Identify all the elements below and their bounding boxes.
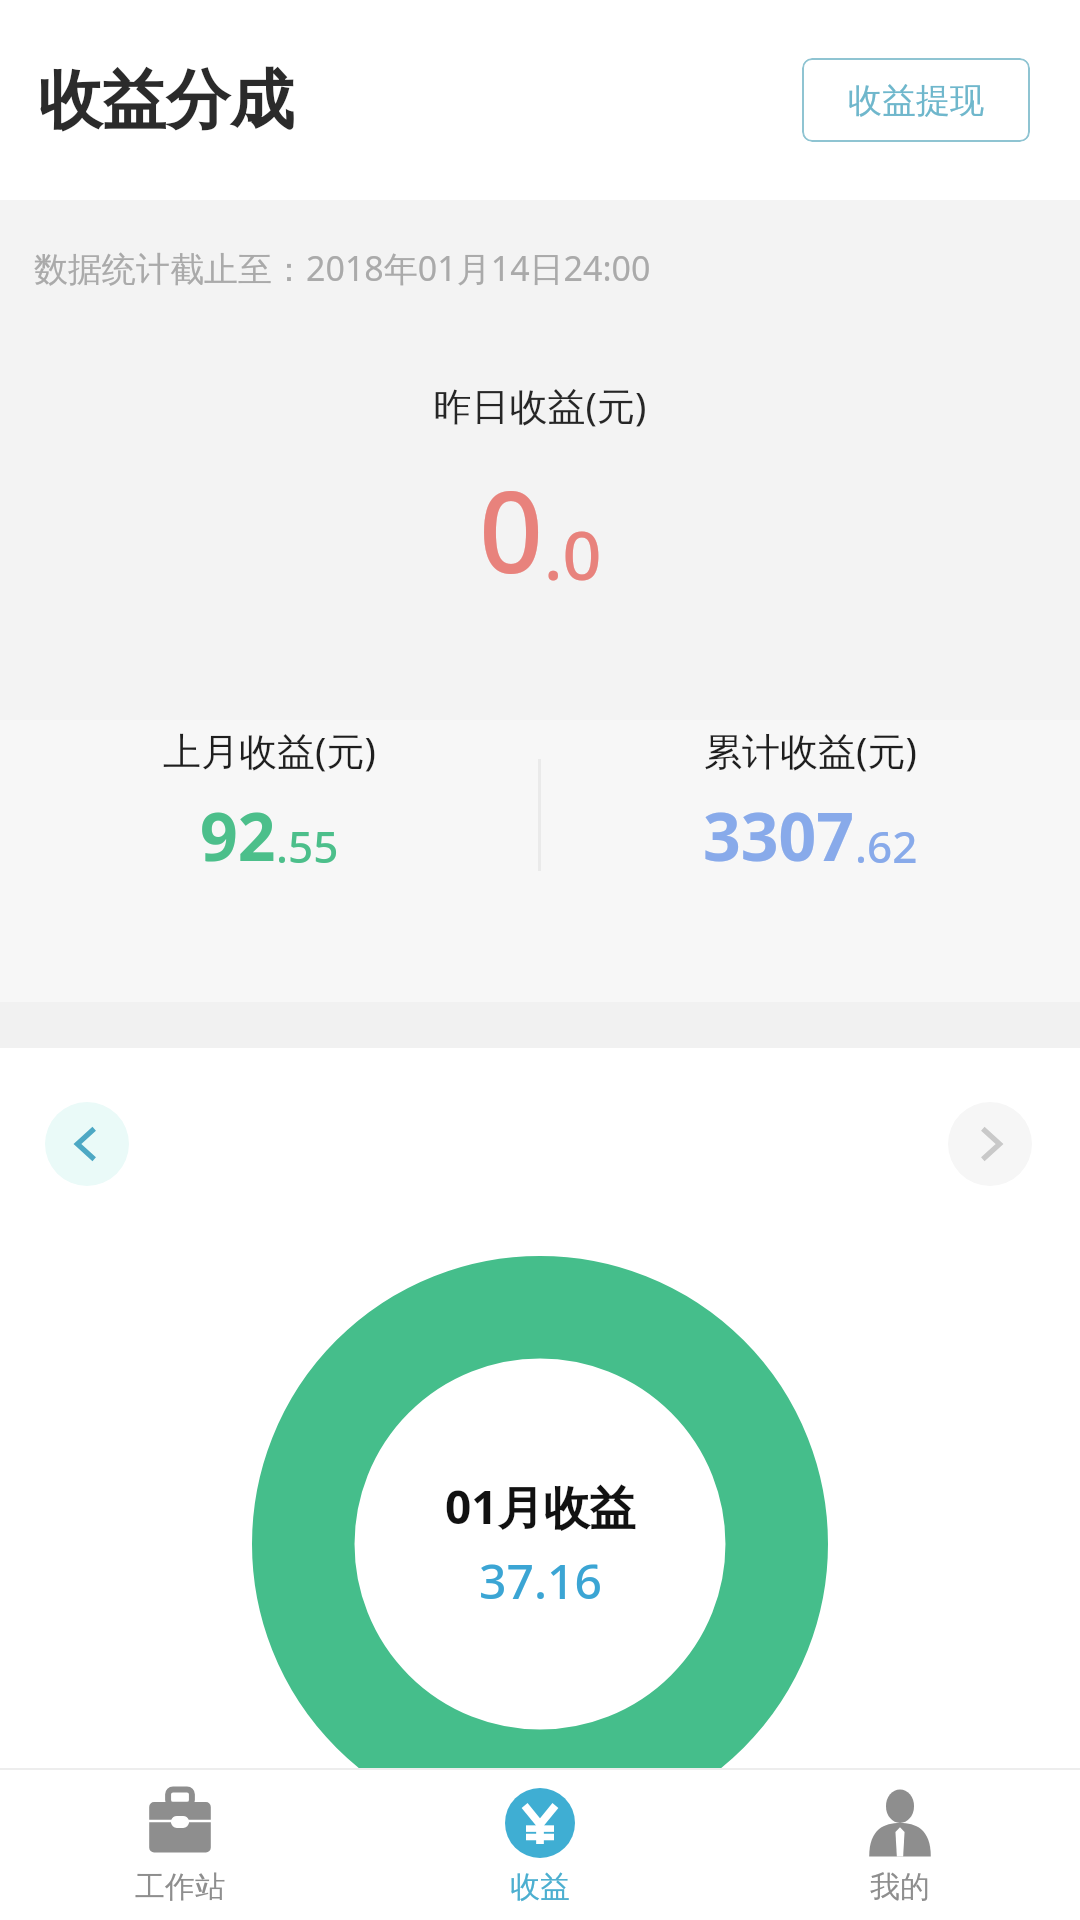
staticText: .55 [276, 816, 339, 876]
staticText: 累计收益(元) [704, 724, 917, 776]
staticText: 工作站 [135, 1868, 225, 1906]
button[interactable]: 工作站 [0, 1768, 360, 1920]
staticText: 收益 [510, 1868, 570, 1906]
staticText: 0 [479, 453, 544, 606]
staticText: 上月收益(元) [163, 724, 376, 776]
button[interactable]: 收益提现 [802, 58, 1030, 142]
staticText: 01月收益 [445, 1475, 636, 1538]
staticText: 数据统计截止至：2018年01月14日24:00 [34, 245, 651, 291]
button[interactable]: 我的 [720, 1768, 1080, 1920]
staticText: 昨日收益(元) [0, 379, 1080, 431]
button[interactable]: 上月收益(元) [0, 700, 538, 880]
staticText: 我的 [870, 1868, 930, 1906]
staticText: 收益提现 [848, 79, 984, 122]
button[interactable]: 收益 [360, 1768, 720, 1920]
staticText: 收益分成 [38, 60, 294, 141]
staticText: 92 [200, 790, 276, 880]
staticText: .0 [544, 507, 602, 600]
button[interactable]: Next month [948, 1102, 1032, 1186]
staticText: 3307 [703, 790, 855, 880]
button[interactable]: Previous month [45, 1102, 129, 1186]
button[interactable]: 累计收益(元) [541, 700, 1080, 880]
staticText: 37.16 [479, 1548, 602, 1613]
staticText: .62 [855, 816, 918, 876]
